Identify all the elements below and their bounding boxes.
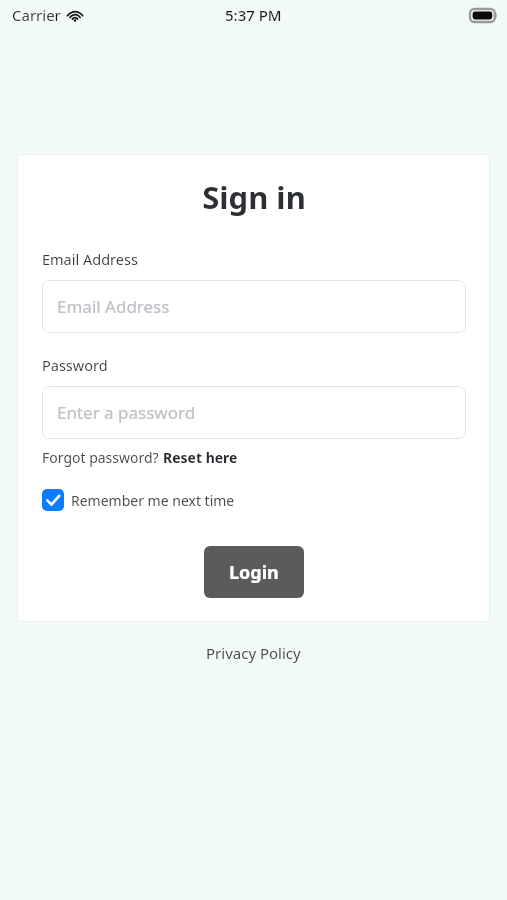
staticText: Reset here [163, 448, 238, 467]
button[interactable]: Enter a password [42, 386, 466, 439]
staticText: Privacy Policy [206, 643, 301, 663]
button[interactable]: Reset here [163, 448, 238, 467]
staticText: 5:37 PM [225, 5, 282, 25]
staticText: Sign in [202, 176, 306, 218]
button[interactable]: Email Address [42, 280, 466, 333]
staticText: Remember me next time [71, 491, 235, 510]
button[interactable]: Login [204, 546, 304, 598]
other: Wi-Fi signal [67, 9, 83, 22]
button[interactable]: Privacy Policy [200, 640, 307, 666]
staticText: Email Address [42, 249, 138, 269]
staticText: Carrier [12, 5, 61, 25]
staticText: Password [42, 355, 108, 375]
staticText: Email Address [57, 295, 170, 318]
staticText: Enter a password [57, 401, 196, 424]
staticText: Login [229, 560, 279, 585]
other: Battery full [470, 9, 497, 22]
staticText: Forgot password? [42, 448, 163, 467]
button[interactable]: Remember me next time [42, 487, 235, 513]
